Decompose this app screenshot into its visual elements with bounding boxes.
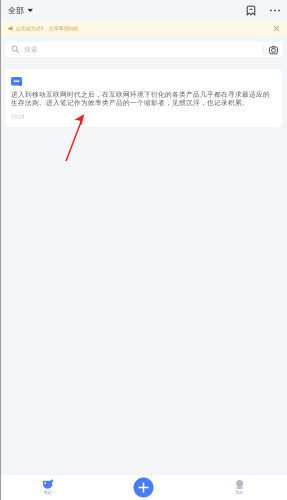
button[interactable]: 新建笔记: [96, 475, 191, 500]
staticText: 搜索: [24, 45, 38, 54]
button[interactable]: 更多: [265, 0, 285, 21]
button[interactable]: 扫一扫: [264, 42, 283, 57]
button[interactable]: 我的: [191, 475, 287, 500]
button[interactable]: 收藏: [237, 0, 265, 21]
staticText: 我的: [235, 490, 243, 495]
staticText: 点亮成为VIP，立享尊贵特权: [15, 25, 78, 32]
button[interactable]: 进入到移动互联网时代之后，在互联网环境下衍化的各类产品几乎都在寻求最适应的生存法…: [5, 69, 282, 127]
button[interactable]: 关闭: [270, 21, 283, 36]
staticText: 全部: [8, 6, 24, 15]
button[interactable]: 笔记: [0, 475, 96, 500]
staticText: 19:24: [11, 113, 24, 120]
staticText: 笔记: [44, 490, 52, 495]
staticText: 进入到移动互联网时代之后，在互联网环境下衍化的各类产品几乎都在寻求最适应的生存法…: [11, 90, 270, 107]
button[interactable]: 全部: [0, 0, 39, 21]
